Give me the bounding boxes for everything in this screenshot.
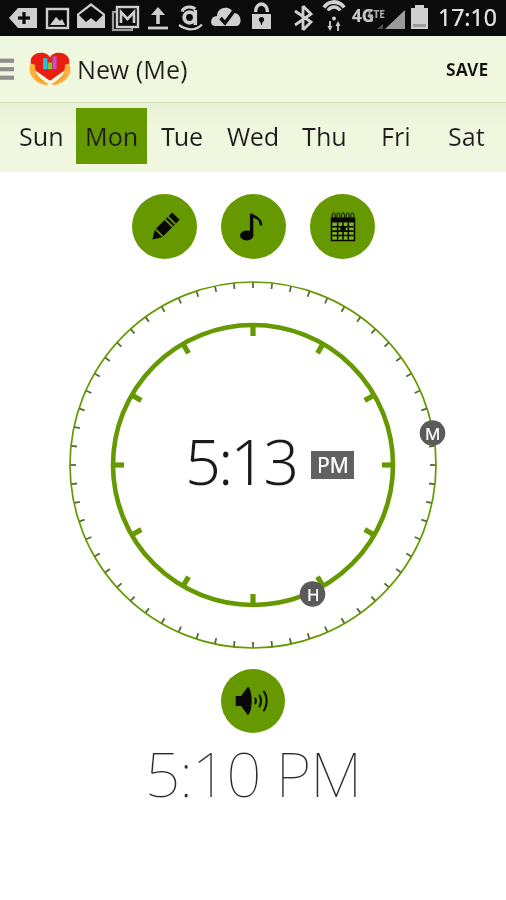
staticText: 17:10 — [438, 1, 497, 32]
staticText: Fri — [381, 119, 411, 153]
staticText: PM — [317, 451, 349, 479]
button[interactable]: Thu — [289, 108, 360, 164]
staticText: 4G — [352, 4, 375, 27]
button[interactable]: Wed — [218, 108, 289, 164]
button[interactable]: Tue — [147, 108, 218, 164]
button[interactable]: Fri — [360, 108, 431, 164]
button[interactable]: Menu — [0, 36, 18, 102]
staticText: Sun — [19, 119, 64, 153]
button[interactable]: Sat — [431, 108, 502, 164]
staticText: SAVE — [446, 57, 489, 81]
button[interactable]: Choose ringtone — [221, 194, 286, 259]
staticText: 5:13 — [185, 418, 297, 504]
staticText: Sat — [448, 119, 485, 153]
button[interactable]: Choose date — [310, 194, 375, 259]
staticText: M — [425, 422, 441, 445]
button[interactable]: Add note — [132, 194, 197, 259]
staticText: 5:10 PM — [0, 731, 506, 815]
staticText: Tue — [161, 119, 204, 153]
button[interactable]: Hours handle — [300, 581, 326, 607]
staticText: Wed — [227, 119, 280, 153]
button[interactable]: Sun — [6, 108, 76, 164]
button[interactable]: Mon — [76, 108, 147, 164]
staticText: Thu — [302, 119, 347, 153]
staticText: H — [307, 583, 320, 606]
button[interactable]: 5:13 — [185, 418, 297, 504]
staticText: Mon — [85, 119, 139, 153]
button[interactable]: SAVE — [427, 36, 506, 102]
staticText: LTE — [368, 7, 385, 21]
staticText: New (Me) — [77, 52, 188, 86]
button[interactable]: Test sound — [221, 669, 285, 733]
button[interactable]: Minutes handle — [420, 420, 446, 446]
